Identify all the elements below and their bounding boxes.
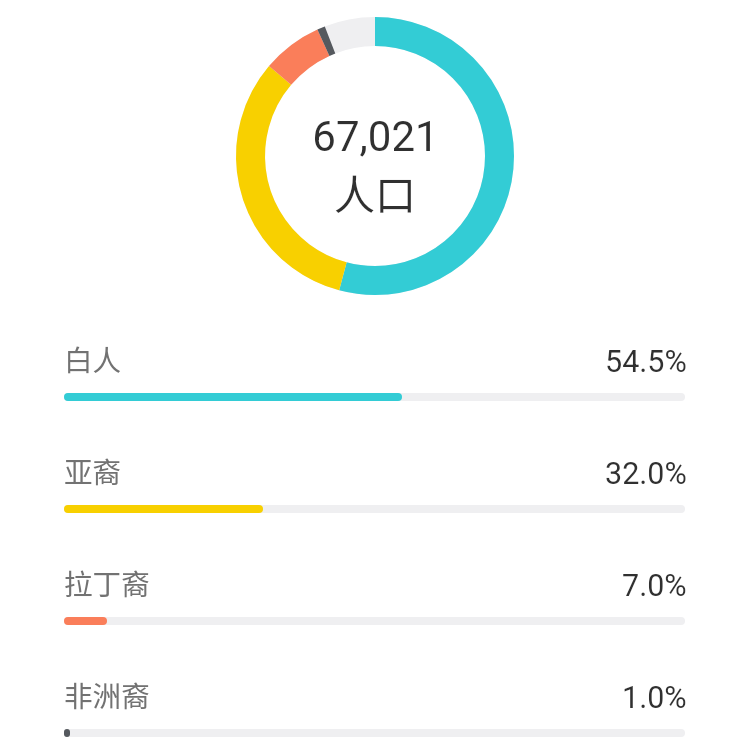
button[interactable]: Population breakdown chart xyxy=(236,17,514,295)
button[interactable]: 拉丁裔 xyxy=(0,554,750,666)
button[interactable]: 白人 xyxy=(0,330,750,442)
staticText: 54.5% xyxy=(605,344,687,380)
staticText: 白人 xyxy=(64,338,122,379)
staticText: 1.0% xyxy=(622,680,687,716)
button[interactable]: 亚裔 xyxy=(0,442,750,554)
staticText: 亚裔 xyxy=(64,450,122,491)
staticText: 7.0% xyxy=(622,568,687,604)
staticText: 67,021 xyxy=(312,112,439,161)
staticText: 非洲裔 xyxy=(64,674,150,715)
staticText: 拉丁裔 xyxy=(64,562,150,603)
button[interactable]: 非洲裔 xyxy=(0,666,750,756)
staticText: 32.0% xyxy=(605,456,687,492)
staticText: 人口 xyxy=(334,162,416,221)
